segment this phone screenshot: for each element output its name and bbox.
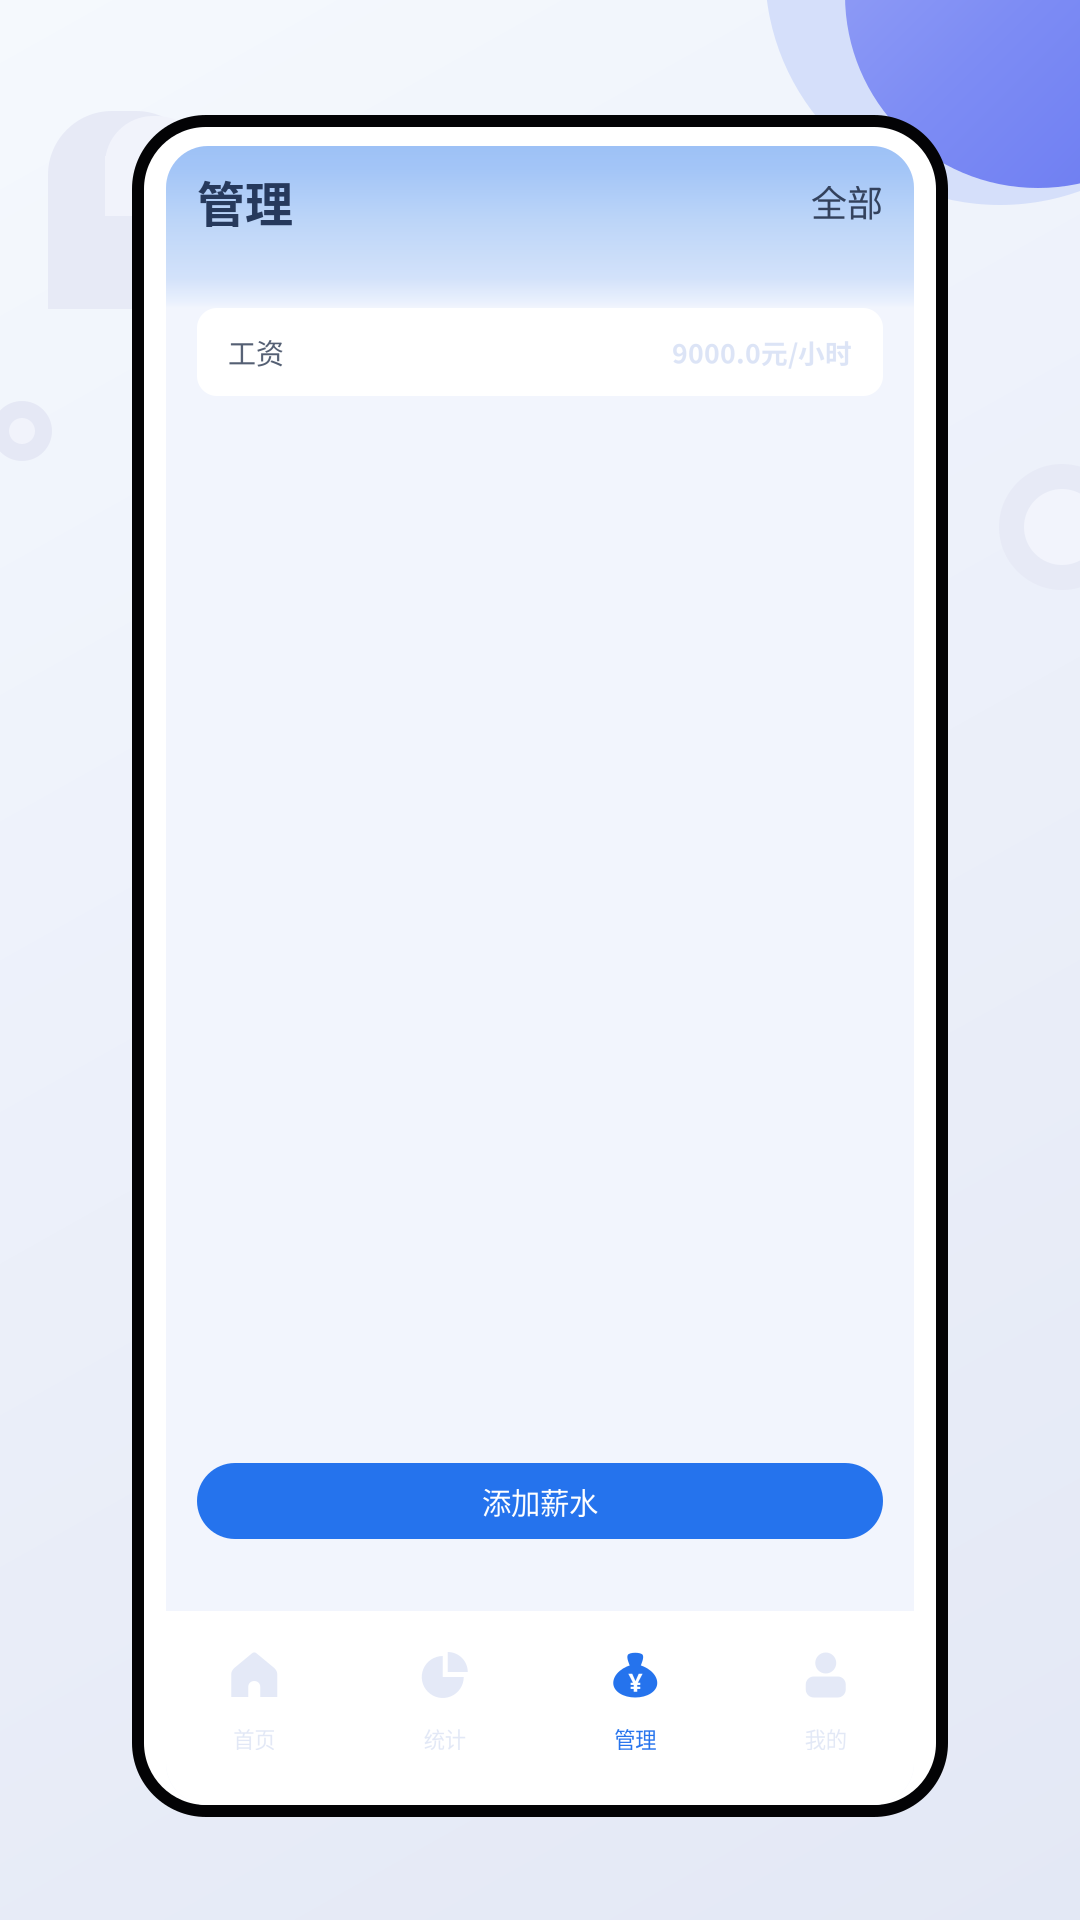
staticText: 工资 [228,332,284,372]
button[interactable]: 添加薪水 [197,1463,883,1539]
button[interactable]: 统计 [349,1611,540,1805]
button[interactable]: 首页 [159,1611,349,1805]
button[interactable]: 工资 [197,308,883,396]
button[interactable]: ¥ [540,1611,730,1805]
staticText: 全部 [811,175,883,227]
button[interactable]: 我的 [730,1611,921,1805]
staticText: 9000.0元/小时 [672,333,852,371]
staticText: 我的 [805,1723,847,1754]
staticText: ¥ [628,1665,642,1699]
staticText: 管理 [614,1723,656,1754]
button[interactable]: 全部 [811,175,883,227]
staticText: 管理 [197,166,293,236]
staticText: 统计 [424,1723,466,1754]
staticText: 添加薪水 [482,1480,598,1522]
staticText: 首页 [233,1723,275,1754]
